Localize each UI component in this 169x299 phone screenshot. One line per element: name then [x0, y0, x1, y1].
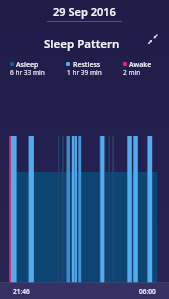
staticText: Restless — [73, 60, 101, 70]
staticText: Sleep Pattern — [44, 36, 120, 52]
staticText: 2 min — [123, 68, 141, 77]
staticText: 06:00 — [139, 287, 156, 296]
staticText: 29 Sep 2016 — [53, 4, 116, 19]
staticText: 21:46 — [13, 287, 30, 296]
staticText: Asleep — [16, 60, 39, 70]
staticText: 6 hr 33 min — [10, 68, 45, 77]
staticText: Awake — [129, 60, 152, 70]
button[interactable] — [144, 31, 162, 48]
staticText: 1 hr 39 min — [67, 68, 102, 77]
button[interactable]: 29 Sep 2016 — [53, 4, 116, 19]
